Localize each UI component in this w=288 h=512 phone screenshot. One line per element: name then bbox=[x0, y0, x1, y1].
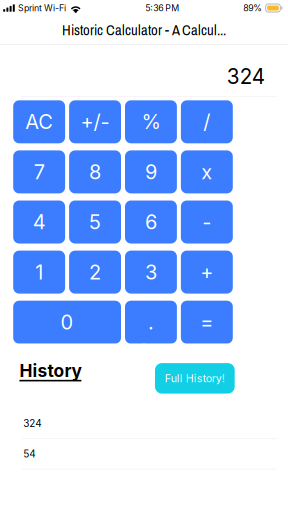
button[interactable]: 7 bbox=[13, 150, 65, 193]
staticText: 4 bbox=[33, 210, 46, 234]
staticText: 2 bbox=[89, 260, 101, 284]
button[interactable]: 2 bbox=[69, 251, 121, 294]
button[interactable]: % bbox=[125, 100, 177, 143]
staticText: - bbox=[202, 210, 211, 234]
staticText: History bbox=[19, 360, 81, 381]
staticText: +/- bbox=[80, 110, 109, 134]
button[interactable]: 5 bbox=[69, 200, 121, 243]
button[interactable]: . bbox=[125, 301, 177, 344]
button[interactable]: + bbox=[181, 251, 233, 294]
button[interactable]: +/- bbox=[69, 100, 121, 143]
button[interactable]: 4 bbox=[13, 200, 65, 243]
button[interactable]: = bbox=[181, 301, 233, 344]
staticText: x bbox=[201, 160, 212, 184]
staticText: 8 bbox=[89, 160, 101, 184]
staticText: 324 bbox=[23, 417, 41, 429]
staticText: = bbox=[200, 310, 213, 334]
staticText: + bbox=[200, 260, 213, 284]
staticText: 54 bbox=[23, 448, 35, 460]
staticText: Sprint Wi-Fi bbox=[18, 3, 66, 13]
staticText: 7 bbox=[34, 160, 45, 184]
staticText: Full History! bbox=[165, 372, 225, 385]
staticText: % bbox=[141, 110, 160, 134]
staticText: 89% bbox=[243, 3, 262, 13]
button[interactable]: / bbox=[181, 100, 233, 143]
button[interactable]: 9 bbox=[125, 150, 177, 193]
button[interactable]: 3 bbox=[125, 251, 177, 294]
staticText: 0 bbox=[61, 310, 74, 334]
staticText: 6 bbox=[145, 210, 157, 234]
button[interactable]: 6 bbox=[125, 200, 177, 243]
button[interactable]: AC bbox=[13, 100, 65, 143]
button[interactable]: x bbox=[181, 150, 233, 193]
staticText: 3 bbox=[145, 260, 157, 284]
button[interactable]: 324 bbox=[0, 409, 288, 439]
staticText: AC bbox=[25, 110, 53, 134]
button[interactable]: 0 bbox=[13, 301, 121, 344]
staticText: 5 bbox=[89, 210, 101, 234]
staticText: . bbox=[148, 310, 154, 334]
staticText: 9 bbox=[145, 160, 157, 184]
button[interactable]: 8 bbox=[69, 150, 121, 193]
button[interactable]: 54 bbox=[0, 439, 288, 470]
staticText: Historic Calculator - A Calcul... bbox=[62, 20, 226, 40]
staticText: 1 bbox=[35, 260, 43, 284]
button[interactable]: - bbox=[181, 200, 233, 243]
staticText: 5:36 PM bbox=[145, 3, 179, 13]
staticText: 324 bbox=[227, 64, 265, 89]
button[interactable]: 1 bbox=[13, 251, 65, 294]
staticText: / bbox=[203, 110, 210, 134]
button[interactable]: Full History! bbox=[155, 363, 235, 394]
